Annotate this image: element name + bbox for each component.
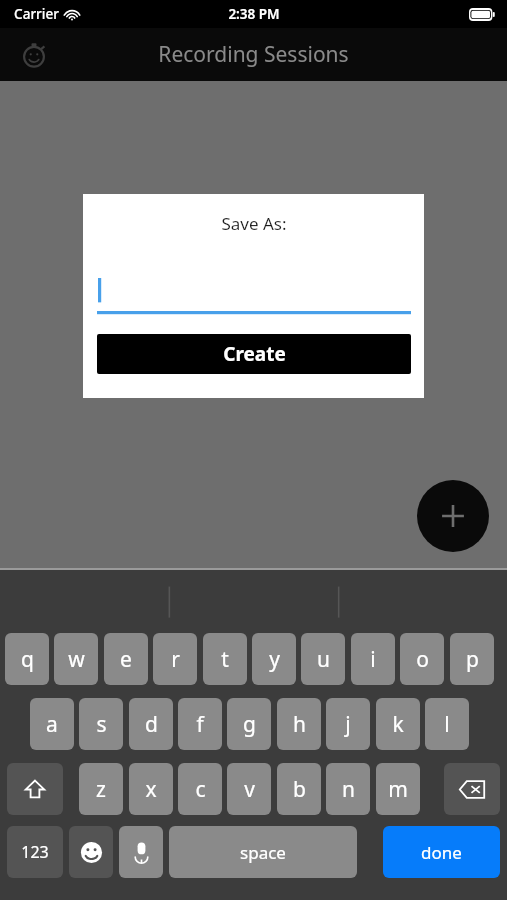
button[interactable]: h [277, 698, 321, 750]
staticText: h [293, 710, 306, 739]
button[interactable]: d [129, 698, 173, 750]
staticText: r [171, 645, 180, 674]
staticText: g [243, 710, 256, 739]
button[interactable]: w [54, 633, 98, 685]
button[interactable]: i [351, 633, 395, 685]
staticText: x [145, 775, 157, 804]
button[interactable]: Emoji [69, 826, 113, 878]
staticText: w [68, 645, 85, 674]
button[interactable]: l [425, 698, 469, 750]
staticText: t [221, 645, 229, 674]
button[interactable]: s [79, 698, 123, 750]
staticText: s [96, 710, 107, 739]
button[interactable]: Add recording session [417, 480, 489, 552]
staticText: e [120, 645, 132, 674]
staticText: Create [223, 341, 286, 367]
staticText: q [21, 645, 34, 674]
staticText: v [244, 775, 255, 804]
staticText: Save As: [221, 212, 287, 235]
button[interactable]: o [400, 633, 444, 685]
staticText: Press + to add them. [122, 227, 386, 262]
button[interactable]: y [252, 633, 296, 685]
staticText: n [342, 775, 355, 804]
button[interactable]: p [450, 633, 494, 685]
button[interactable]: m [376, 763, 420, 815]
button[interactable]: Stopwatch [12, 33, 56, 77]
staticText: k [392, 710, 404, 739]
button[interactable]: f [178, 698, 222, 750]
button[interactable]: t [203, 633, 247, 685]
button[interactable]: Shift [7, 763, 63, 815]
button[interactable]: space [169, 826, 357, 878]
button[interactable]: c [178, 763, 222, 815]
staticText: Carrier [14, 5, 59, 23]
button[interactable]: a [30, 698, 74, 750]
button[interactable] [97, 274, 411, 316]
staticText: i [370, 645, 376, 674]
button[interactable]: e [104, 633, 148, 685]
staticText: m [388, 775, 408, 804]
staticText: c [195, 775, 206, 804]
button[interactable]: b [277, 763, 321, 815]
button[interactable]: q [5, 633, 49, 685]
staticText: f [196, 710, 204, 739]
button[interactable]: n [326, 763, 370, 815]
staticText: d [145, 710, 158, 739]
staticText: u [317, 645, 330, 674]
staticText: space [240, 841, 286, 864]
staticText: l [444, 710, 450, 739]
staticText: b [293, 775, 306, 804]
button[interactable]: done [383, 826, 500, 878]
staticText: done [421, 841, 462, 864]
staticText: 123 [21, 841, 49, 863]
button[interactable]: Dictation [119, 826, 163, 878]
button[interactable]: 123 [7, 826, 63, 878]
button[interactable]: Backspace [444, 763, 500, 815]
staticText: Recording Sessions [158, 40, 349, 69]
button[interactable]: r [153, 633, 197, 685]
button[interactable]: g [227, 698, 271, 750]
button[interactable]: Create [97, 334, 411, 374]
staticText: j [345, 710, 351, 739]
button[interactable]: j [326, 698, 370, 750]
button[interactable]: v [227, 763, 271, 815]
button[interactable]: x [129, 763, 173, 815]
staticText: 2:38 PM [228, 5, 280, 23]
button[interactable]: k [376, 698, 420, 750]
button[interactable]: z [79, 763, 123, 815]
staticText: a [46, 710, 58, 739]
staticText: p [466, 645, 479, 674]
staticText: o [416, 645, 429, 674]
button[interactable]: u [301, 633, 345, 685]
staticText: z [96, 775, 106, 804]
staticText: y [269, 645, 280, 674]
